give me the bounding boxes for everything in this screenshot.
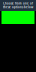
staticText: Choose from one of (3, 2, 33, 5)
staticText: these options below (3, 5, 33, 9)
